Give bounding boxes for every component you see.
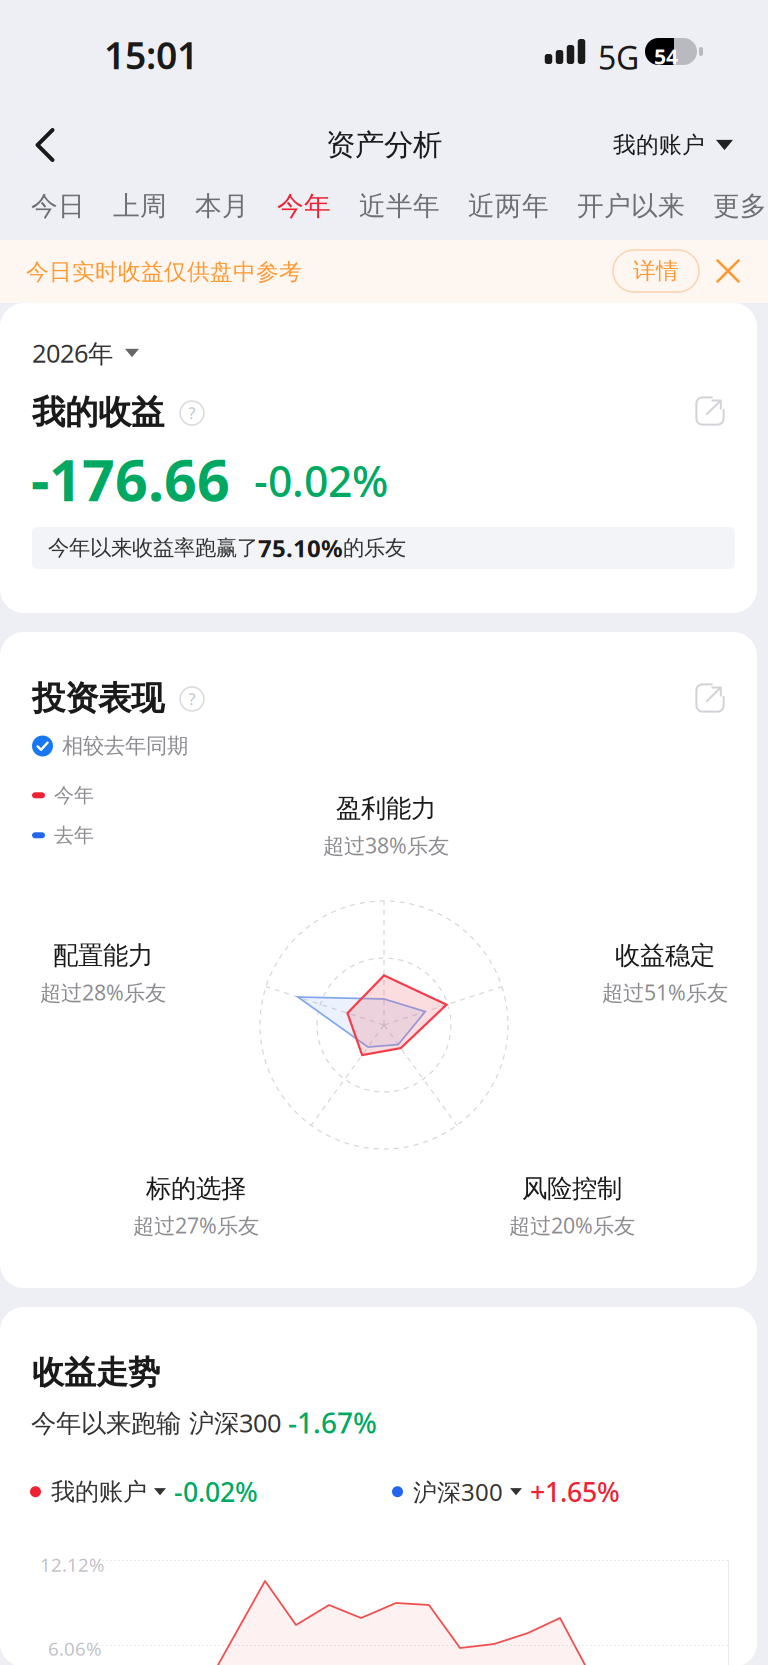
staticText: -0.02%: [174, 1474, 258, 1509]
staticText: 盈利能力: [336, 793, 436, 824]
staticText: 今年: [277, 190, 331, 222]
staticText: 我的收益: [32, 392, 164, 433]
staticText: 今日实时收益仅供盘中参考: [26, 258, 302, 286]
staticText: 相较去年同期: [62, 733, 188, 759]
staticText: 我的账户: [613, 131, 705, 159]
staticText: 今年以来收益率跑赢了: [48, 535, 258, 561]
button[interactable]: 相较去年同期: [32, 728, 188, 764]
button[interactable]: 详情: [613, 250, 699, 292]
button[interactable]: 开户以来: [563, 184, 699, 228]
staticText: 更多: [713, 190, 767, 222]
staticText: 我的账户: [51, 1477, 147, 1506]
staticText: -0.02%: [254, 452, 388, 509]
button[interactable]: 今日: [17, 184, 99, 228]
staticText: 6.06%: [48, 1636, 102, 1661]
staticText: 近两年: [468, 190, 549, 222]
staticText: 去年: [54, 823, 94, 848]
staticText: 详情: [633, 257, 679, 285]
staticText: 标的选择: [146, 1173, 246, 1204]
button[interactable]: 更多: [699, 184, 768, 228]
button[interactable]: 今年: [263, 184, 345, 228]
staticText: 今年以来跑输 沪深300: [31, 1406, 288, 1439]
staticText: 12.12%: [40, 1552, 105, 1577]
staticText: 超过27%乐友: [133, 1211, 259, 1239]
staticText: ?: [188, 688, 195, 710]
staticText: 收益走势: [32, 1353, 160, 1392]
button[interactable]: 本月: [181, 184, 263, 228]
button[interactable]: 近半年: [345, 184, 454, 228]
staticText: 投资表现: [32, 678, 164, 719]
button[interactable]: 近两年: [454, 184, 563, 228]
staticText: 超过20%乐友: [509, 1211, 635, 1239]
button[interactable]: 我的账户: [613, 110, 733, 180]
staticText: 今日: [31, 190, 85, 222]
staticText: 的乐友: [343, 535, 406, 561]
staticText: 超过28%乐友: [40, 978, 166, 1006]
staticText: -1.67%: [288, 1404, 377, 1441]
button[interactable]: Close: [702, 245, 754, 297]
staticText: 2026年: [32, 336, 113, 370]
staticText: 54: [654, 42, 678, 70]
button[interactable]: 上周: [99, 184, 181, 228]
staticText: 5G: [598, 36, 639, 78]
staticText: 超过51%乐友: [602, 978, 728, 1006]
staticText: -176.66: [31, 441, 230, 517]
staticText: 沪深300: [413, 1476, 503, 1508]
staticText: 收益稳定: [615, 940, 715, 971]
staticText: 开户以来: [577, 190, 685, 222]
button[interactable]: Back: [8, 110, 82, 180]
staticText: ?: [188, 402, 195, 424]
button[interactable]: 2026年: [32, 333, 139, 373]
staticText: 超过38%乐友: [323, 831, 449, 859]
staticText: 75.10%: [258, 532, 343, 564]
staticText: 资产分析: [326, 127, 442, 163]
staticText: 本月: [195, 190, 249, 222]
staticText: 上周: [113, 190, 167, 222]
staticText: +1.65%: [530, 1474, 620, 1509]
button[interactable]: Share: [684, 672, 736, 724]
staticText: 今年: [54, 783, 94, 808]
staticText: 配置能力: [53, 940, 153, 971]
button[interactable]: Share: [684, 385, 736, 437]
staticText: 近半年: [359, 190, 440, 222]
staticText: 15:01: [104, 30, 198, 80]
staticText: 风险控制: [522, 1173, 622, 1204]
